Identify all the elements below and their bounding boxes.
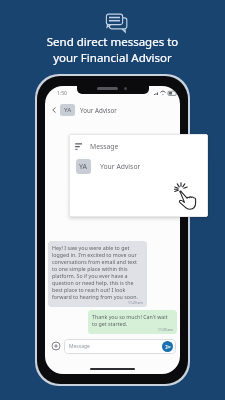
other: Send xyxy=(162,341,173,352)
staticText: Send direct messages to your Financial A… xyxy=(0,34,225,65)
staticText: 11:29 am xyxy=(128,300,143,305)
button[interactable]: Message xyxy=(69,134,208,217)
staticText: Your Advisor xyxy=(100,162,141,171)
staticText: Hey! I saw you were able to get logged i… xyxy=(52,244,143,300)
staticText: Thank you so much! Can't wait to get sta… xyxy=(92,313,173,327)
button[interactable]: Message xyxy=(64,339,176,354)
button[interactable]: Back xyxy=(45,100,180,119)
staticText: Message xyxy=(69,343,90,350)
staticText: Your Advisor xyxy=(80,106,117,114)
button[interactable]: Add attachment xyxy=(51,341,61,351)
staticText: YA xyxy=(79,162,88,171)
staticText: Message xyxy=(90,142,119,151)
staticText: 1:50 xyxy=(57,90,67,97)
button[interactable]: YA xyxy=(76,156,208,177)
other: Back xyxy=(50,106,58,114)
staticText: YA xyxy=(64,106,72,114)
staticText: 11:30 am xyxy=(158,327,173,332)
